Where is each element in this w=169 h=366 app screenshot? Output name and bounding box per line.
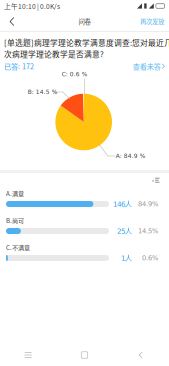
staticText: 0.6% (142, 254, 158, 262)
staticText: 25人 (117, 226, 132, 235)
staticText: A.满意 (6, 189, 24, 198)
staticText: 已答: 172 (4, 61, 34, 71)
staticText: 上午10:10 | 0.0K/s (4, 1, 60, 11)
staticText: 查看未答 (133, 61, 161, 71)
staticText: 问卷 (78, 17, 90, 26)
button[interactable]: Back (113, 344, 169, 366)
staticText: 14.5% (138, 227, 158, 235)
button[interactable]: Home (56, 344, 113, 366)
staticText: [单选题]病理学理论教学满意度调查:您对最近几次病理学理论教学是否满意? (4, 37, 169, 59)
button[interactable]: Recents (0, 344, 56, 366)
staticText: 再次发放 (140, 17, 164, 26)
staticText: C.不满意 (6, 243, 30, 252)
button[interactable]: 查看未答 (133, 61, 165, 71)
button[interactable]: 再次发放 (135, 12, 169, 31)
staticText: C: 0.6 % (62, 71, 88, 77)
button[interactable]: Back (0, 12, 24, 31)
staticText: B: 14.5 % (28, 88, 58, 95)
staticText: B.尚可 (6, 216, 24, 225)
button[interactable]: Switch chart type (151, 176, 161, 185)
staticText: 1人 (121, 253, 132, 262)
staticText: A: 84.9 % (116, 152, 146, 159)
staticText: 146人 (113, 199, 132, 208)
staticText: 84.9% (138, 200, 158, 208)
